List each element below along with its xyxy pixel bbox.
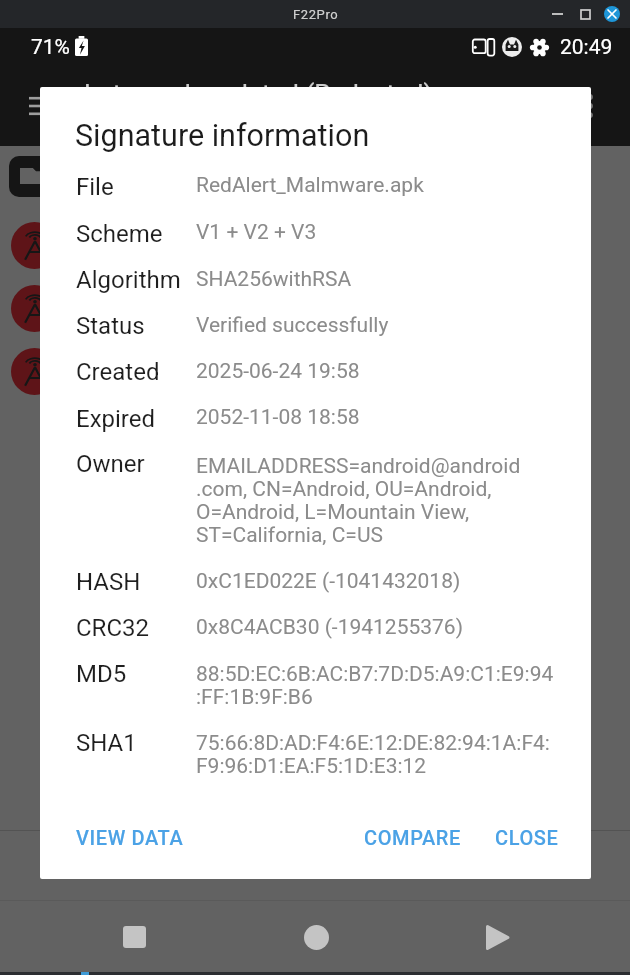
staticText: MD5 — [76, 660, 127, 688]
button[interactable]: App icon — [11, 348, 58, 395]
button[interactable]: CLOSE — [487, 816, 567, 859]
staticText: 0x8C4ACB30 (-1941255376) — [196, 616, 463, 639]
button[interactable]: Close window — [596, 0, 627, 28]
button[interactable]: Recent apps — [101, 904, 167, 970]
staticText: HASH — [76, 568, 141, 596]
button[interactable]: More options — [570, 86, 610, 126]
staticText: SHA1 — [76, 729, 137, 757]
staticText: CRC32 — [76, 614, 150, 642]
staticText: 2025-06-24 19:58 — [196, 360, 360, 383]
button[interactable]: Menu — [18, 84, 62, 128]
button[interactable]: VIEW DATA — [68, 816, 192, 859]
staticText: VIEW DATA — [76, 826, 184, 849]
button[interactable]: App icon — [11, 222, 58, 269]
button[interactable]: Back — [464, 904, 530, 970]
staticText: Signature information — [75, 118, 370, 154]
staticText: CLOSE — [495, 826, 559, 849]
staticText: Status — [76, 312, 145, 340]
staticText: SHA256withRSA — [196, 268, 352, 291]
staticText: File — [76, 173, 114, 201]
staticText: 20:49 — [560, 35, 613, 60]
staticText: EMAILADDRESS=android@android .com, CN=An… — [196, 455, 521, 547]
staticText: 75:66:8D:AD:F4:6E:12:DE:82:94:1A:F4: F9:… — [196, 732, 550, 778]
staticText: 71% — [31, 35, 70, 60]
staticText: Owner — [76, 450, 145, 478]
button[interactable]: Folder — [9, 156, 81, 197]
staticText: 88:5D:EC:6B:AC:B7:7D:D5:A9:C1:E9:94 :FF:… — [196, 663, 554, 709]
staticText: 2052-11-08 18:58 — [196, 406, 360, 429]
staticText: Created — [76, 358, 160, 386]
staticText: RedAlert_Malmware.apk — [196, 174, 424, 197]
staticText: Expired — [76, 405, 156, 433]
staticText: 0xC1ED022E (-1041432018) — [196, 570, 461, 593]
button[interactable]: COMPARE — [356, 816, 469, 859]
button[interactable]: Home — [283, 904, 349, 970]
staticText: COMPARE — [364, 826, 461, 849]
staticText: V1 + V2 + V3 — [196, 221, 317, 244]
staticText: Lotus.apk updated (Redacted) — [84, 79, 433, 109]
staticText: Algorithm — [76, 266, 181, 294]
staticText: Scheme — [76, 220, 163, 248]
button[interactable]: Settings — [531, 39, 548, 56]
button[interactable]: Maximize — [569, 0, 601, 28]
staticText: Verified successfully — [196, 314, 389, 337]
button[interactable]: Minimize — [541, 0, 573, 28]
button[interactable]: Cast — [472, 38, 495, 56]
staticText: F22Pro — [293, 7, 339, 22]
button[interactable]: App icon — [11, 285, 58, 332]
